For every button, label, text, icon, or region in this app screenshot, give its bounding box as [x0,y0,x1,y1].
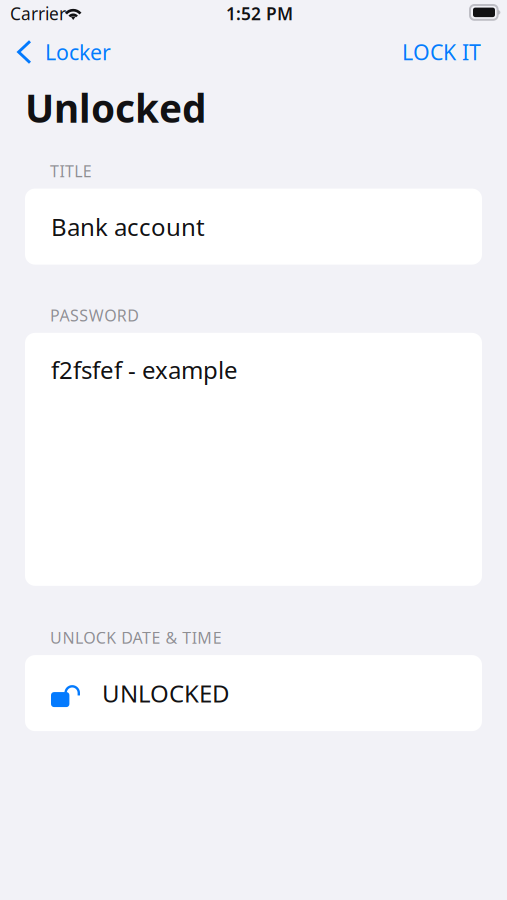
staticText: f2fsfef - example [51,354,238,386]
staticText: Carrier [10,2,66,25]
staticText: TITLE [50,160,92,181]
staticText: Unlocked [25,82,206,133]
button[interactable]: LOCK IT [382,30,507,74]
staticText: 1:52 PM [226,2,293,25]
button[interactable]: Locker [0,30,125,74]
staticText: Locker [45,38,111,66]
staticText: PASSWORD [50,305,139,326]
staticText: LOCK IT [402,38,481,66]
staticText: Bank account [51,211,205,243]
staticText: UNLOCK DATE & TIME [50,627,222,648]
staticText: UNLOCKED [102,677,230,709]
